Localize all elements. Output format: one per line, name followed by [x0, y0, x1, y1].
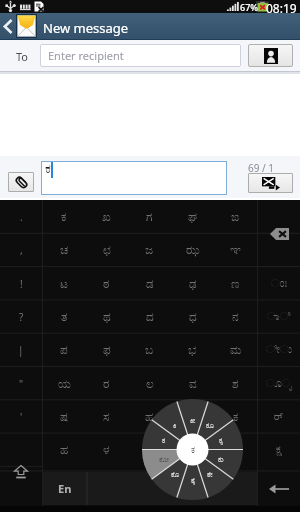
button[interactable]: ಛ	[85, 233, 128, 266]
button[interactable]: En	[43, 472, 87, 505]
button[interactable]: Enter	[258, 472, 300, 505]
staticText: ಕ	[233, 411, 239, 423]
button[interactable]: ಳ	[85, 433, 128, 466]
button[interactable]: ನ	[214, 300, 257, 333]
button[interactable]: ಲ	[128, 367, 171, 400]
staticText: ಜ	[188, 444, 197, 456]
staticText: ಜ	[145, 244, 154, 256]
button[interactable]: ಕೊ	[162, 467, 188, 481]
button[interactable]: ಥ	[85, 300, 128, 333]
button[interactable]: ◌ಾ◌ಿ	[258, 300, 300, 333]
button[interactable]: ಜ	[171, 433, 214, 466]
staticText: ?	[19, 310, 24, 324]
button[interactable]: ದ	[128, 300, 171, 333]
staticText: ಠ	[103, 278, 110, 290]
button[interactable]: Back	[0, 13, 16, 39]
staticText: ಱ	[232, 444, 240, 456]
button[interactable]: ರ್	[258, 400, 300, 433]
button[interactable]: Shift	[0, 437, 42, 506]
button[interactable]: Backspace	[258, 200, 300, 267]
button[interactable]: ಧ	[171, 300, 214, 333]
staticText: ಞ	[230, 244, 241, 256]
button[interactable]: ಸ	[85, 400, 128, 433]
button[interactable]: ಜ	[128, 233, 171, 266]
button[interactable]: ಕ	[43, 200, 85, 233]
button[interactable]: ಷ	[43, 400, 85, 433]
button[interactable]: ಪ	[43, 333, 85, 366]
button[interactable]: ಕ	[214, 400, 257, 433]
staticText: ನ	[232, 311, 239, 323]
button[interactable]: ಭ	[171, 333, 214, 366]
staticText: ಕ	[61, 211, 67, 223]
staticText: ಕೊ	[171, 471, 179, 478]
button[interactable]: Space	[88, 472, 257, 505]
button[interactable]: ಚ	[43, 233, 85, 266]
button[interactable]: ಕ	[41, 161, 227, 195]
button[interactable]: ಟ	[43, 267, 85, 300]
button[interactable]: ಫ	[85, 333, 128, 366]
button[interactable]: ಠ	[85, 267, 128, 300]
button[interactable]: ಕೇ	[197, 467, 223, 481]
staticText: |	[18, 343, 24, 357]
button[interactable]: ಕೋ	[151, 452, 177, 466]
staticText: ಲ	[146, 378, 154, 390]
button[interactable]: "	[0, 367, 42, 400]
staticText: ಚ	[60, 244, 69, 256]
button[interactable]: ಮ	[214, 333, 257, 366]
button[interactable]: ಱ	[214, 433, 257, 466]
button[interactable]: ಙ	[214, 200, 257, 233]
button[interactable]: ಗ	[128, 200, 171, 233]
button[interactable]: Attach	[8, 172, 34, 192]
button[interactable]: ಹ	[128, 400, 171, 433]
button[interactable]: ಕೀ	[180, 413, 206, 427]
staticText: ಪ	[60, 344, 68, 356]
button[interactable]: ಂಃ	[258, 267, 300, 300]
button[interactable]: ಖ	[85, 200, 128, 233]
button[interactable]: ◌ೂ◌ೃ	[258, 367, 300, 400]
button[interactable]: ಹ	[43, 433, 85, 466]
button[interactable]: ಕ	[128, 433, 171, 466]
button[interactable]: ,	[0, 233, 42, 266]
button[interactable]: ಘ	[171, 200, 214, 233]
button[interactable]: ಝ	[171, 233, 214, 266]
button[interactable]: ◌ೀ◌ು	[258, 333, 300, 366]
staticText: ಟ	[60, 278, 68, 290]
button[interactable]: ಕೈ	[180, 473, 206, 487]
button[interactable]: ಬ	[128, 333, 171, 366]
staticText: ಕೂ	[206, 422, 214, 429]
staticText: Enter recipient	[48, 48, 124, 63]
staticText: ಸ	[103, 411, 110, 423]
staticText: ಕೀ	[190, 417, 196, 424]
button[interactable]: ಢ	[171, 267, 214, 300]
button[interactable]: ಕ್ಷ	[258, 433, 300, 466]
button[interactable]: ಕಿ	[162, 418, 188, 432]
staticText: ಕೈ	[191, 477, 196, 484]
button[interactable]: ಶ	[214, 367, 257, 400]
button[interactable]: Pick contact	[248, 44, 293, 67]
button[interactable]: ವ	[171, 367, 214, 400]
button[interactable]: |	[0, 333, 42, 366]
button[interactable]: ಕೂ	[197, 418, 223, 432]
button[interactable]: ಞ	[214, 233, 257, 266]
button[interactable]: ?	[0, 300, 42, 333]
button[interactable]: Send message	[248, 173, 293, 193]
button[interactable]: Enter recipient	[40, 44, 241, 67]
staticText: ಢ	[189, 278, 197, 290]
staticText: New message	[43, 19, 129, 37]
button[interactable]: ಯ	[43, 367, 85, 400]
staticText: ರ್	[274, 411, 284, 422]
button[interactable]: ಡ	[128, 267, 171, 300]
button[interactable]: ಣ	[214, 267, 257, 300]
button[interactable]: !	[0, 267, 42, 300]
button[interactable]: ರ	[85, 367, 128, 400]
button[interactable]: ಕ	[151, 433, 177, 447]
button[interactable]: ತ	[43, 300, 85, 333]
button[interactable]: ಕು	[208, 452, 234, 466]
staticText: ಯ	[58, 378, 71, 390]
staticText: ಥ	[103, 311, 111, 323]
button[interactable]: ಕೃ	[208, 433, 234, 447]
button[interactable]: ಳ	[171, 400, 214, 433]
staticText: ◌ೂ◌ೃ	[266, 378, 293, 389]
